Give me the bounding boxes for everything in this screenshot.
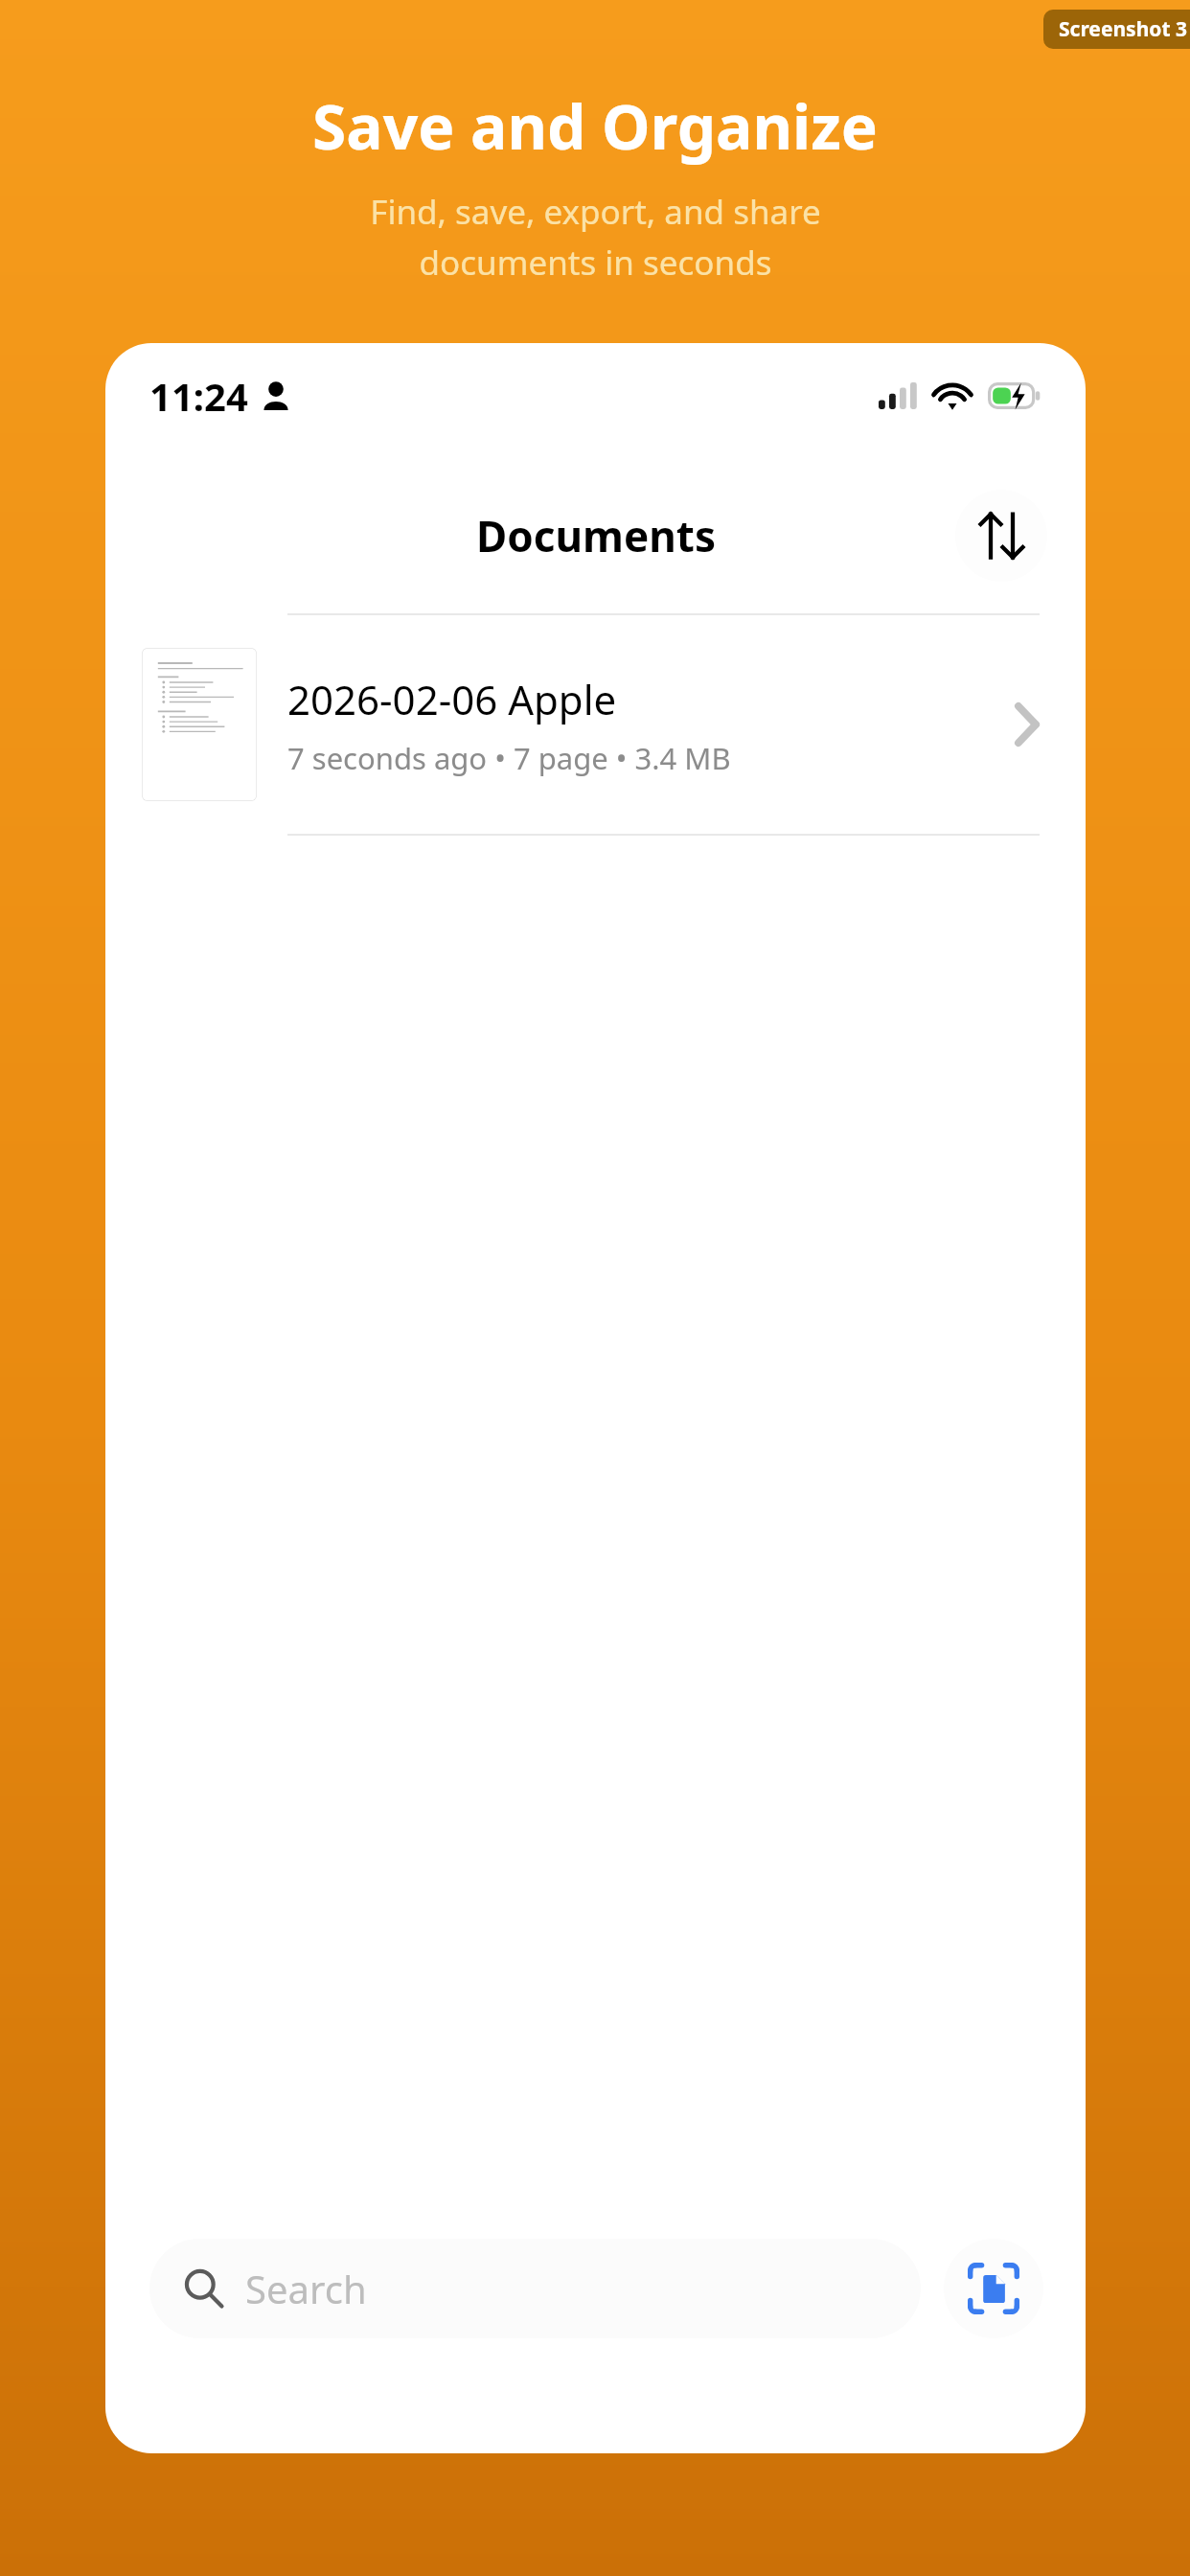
button[interactable]: Sort [955, 490, 1047, 582]
staticText: 11:24 [149, 370, 248, 422]
button[interactable]: 2026-02-06 Apple [105, 615, 1086, 834]
staticText: 2026-02-06 Apple [287, 672, 617, 726]
staticText: Find, save, export, and share documents … [370, 189, 821, 285]
staticText: 7 seconds ago • 7 page • 3.4 MB [287, 738, 731, 778]
staticText: Search [245, 2263, 367, 2314]
staticText: Screenshot 3 [1059, 15, 1188, 43]
button[interactable]: Search [149, 2239, 921, 2338]
staticText: Save and Organize [312, 84, 878, 168]
staticText: Documents [476, 507, 716, 564]
button[interactable]: Scan document [944, 2239, 1043, 2338]
button[interactable]: Screenshot 3 [1043, 10, 1190, 49]
